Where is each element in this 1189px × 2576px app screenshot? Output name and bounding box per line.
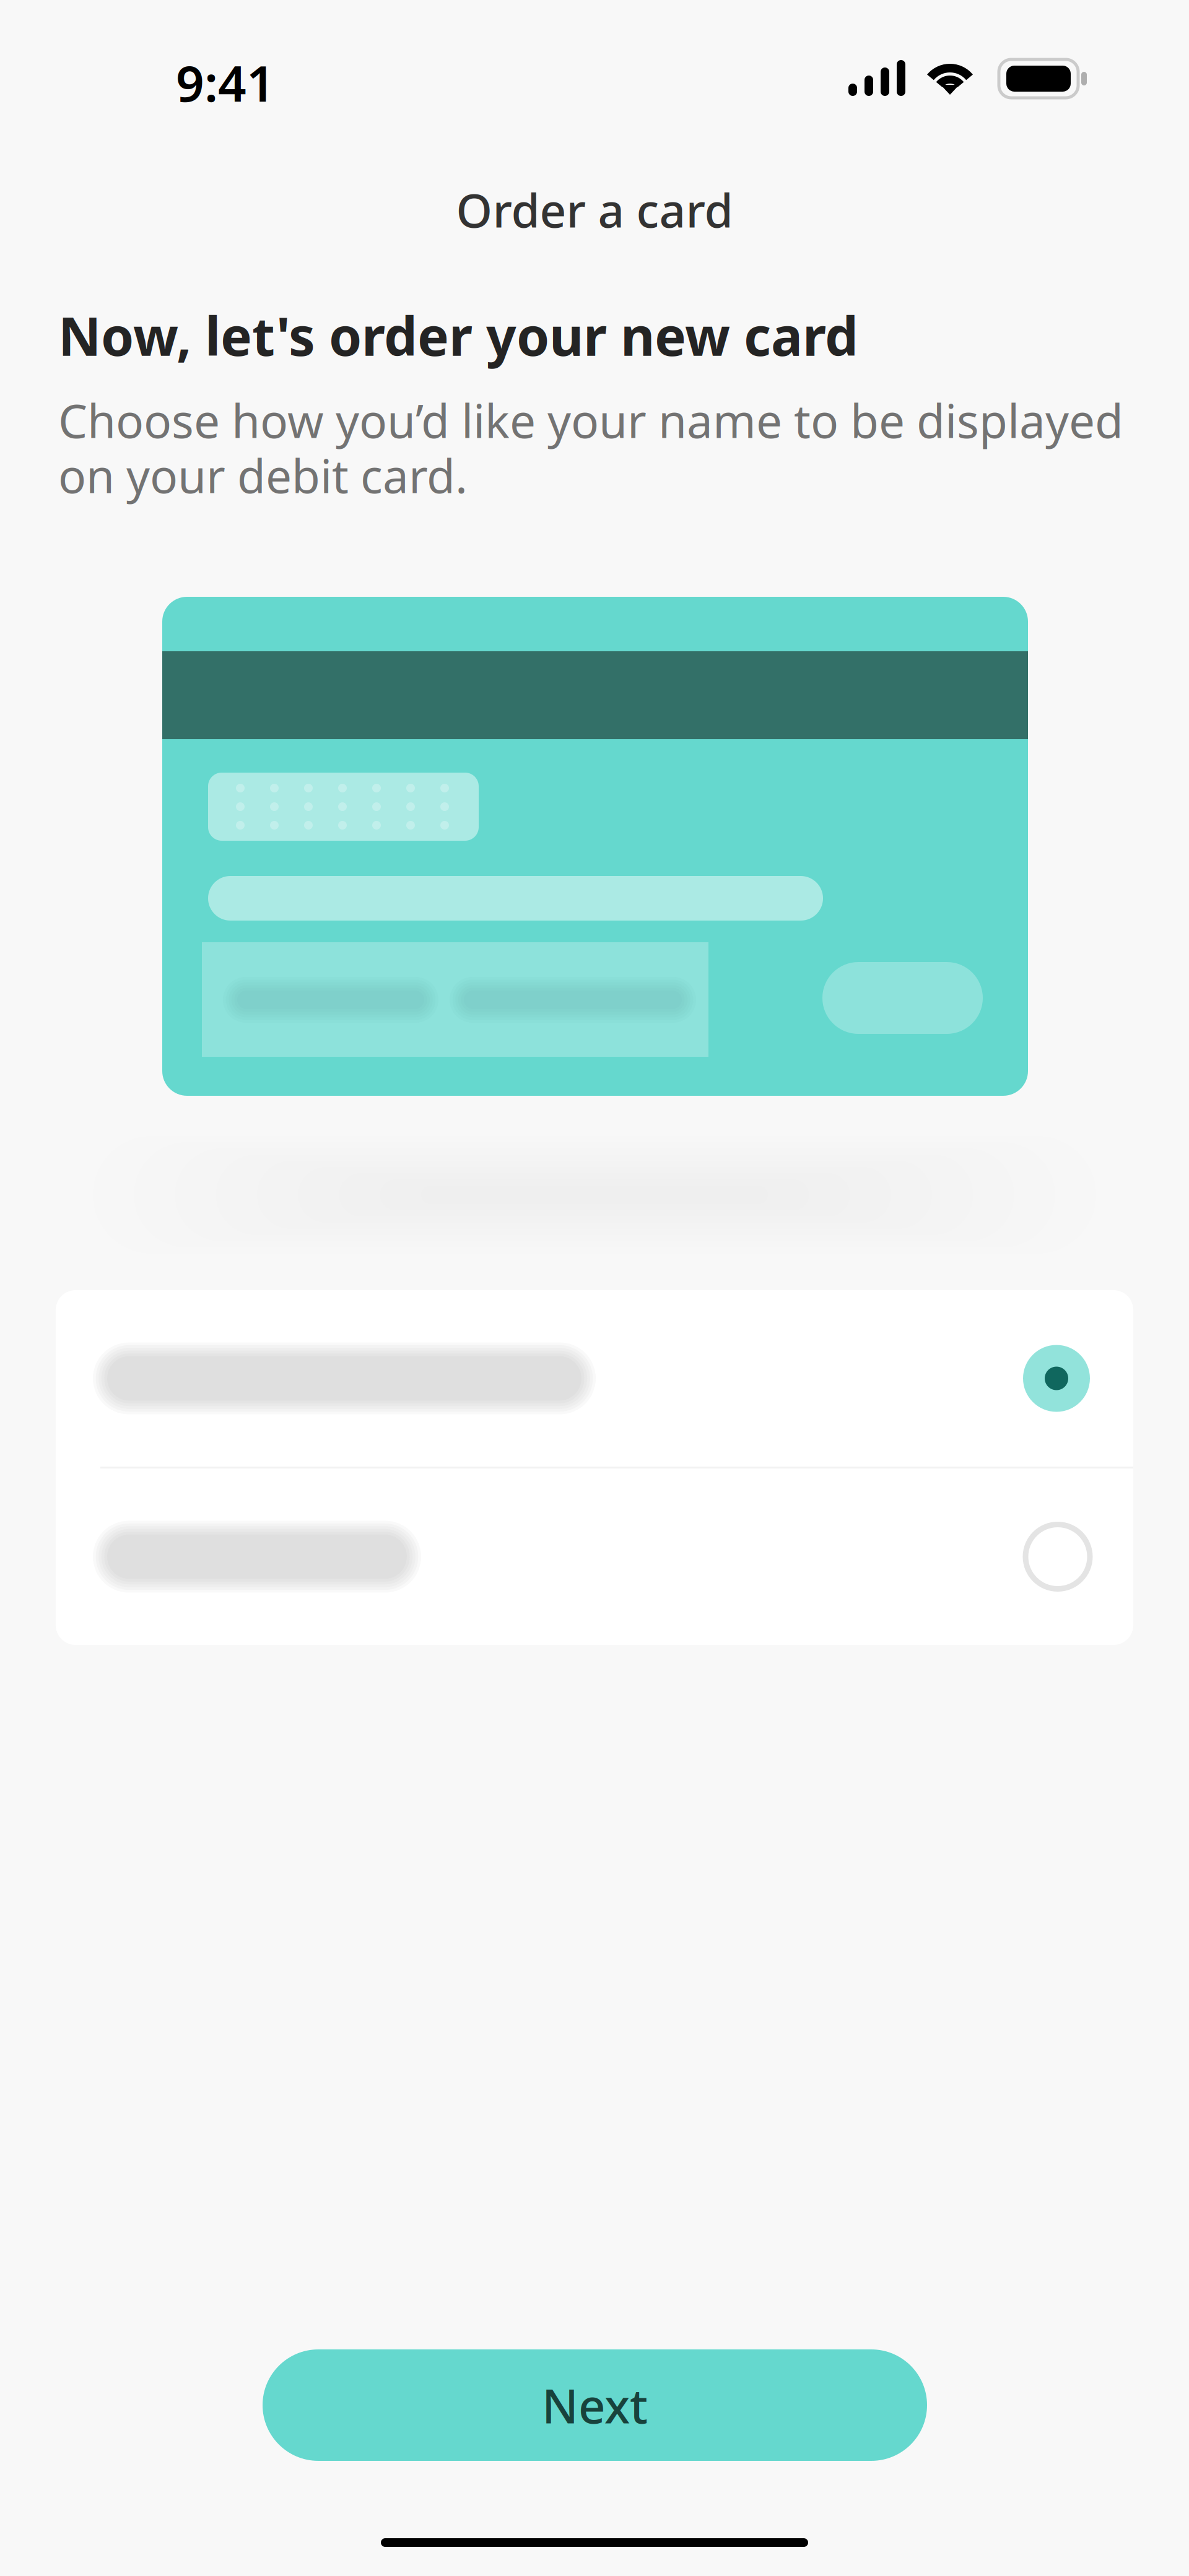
button[interactable]: Full name selected	[93, 1290, 1090, 1467]
staticText: Choose how you’d like your name to be di…	[58, 389, 1123, 451]
staticText: Order a card	[456, 179, 733, 240]
button[interactable]: Next	[263, 2349, 927, 2461]
button[interactable]: Short name	[93, 1468, 1090, 1645]
staticText: Next	[542, 2374, 648, 2436]
staticText: 9:41	[176, 50, 275, 115]
staticText: Now, let's order your new card	[58, 300, 858, 370]
staticText: on your debit card.	[58, 445, 468, 506]
